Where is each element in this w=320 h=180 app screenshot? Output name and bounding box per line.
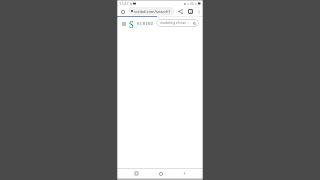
button[interactable]: Menu <box>121 21 126 26</box>
staticText: 4G <box>190 2 194 6</box>
button[interactable]: Tabs <box>186 7 194 15</box>
button[interactable]: More options <box>195 8 202 15</box>
button[interactable]: Home <box>156 169 165 178</box>
staticText: 11:27 <box>119 1 129 6</box>
staticText: 3 <box>190 10 192 14</box>
staticText: marketing of man … <box>160 21 190 25</box>
button[interactable]: marketing of man … <box>156 19 199 27</box>
staticText: SCRIBD <box>137 21 155 26</box>
button[interactable]: Back <box>180 169 189 178</box>
button[interactable]: Share <box>176 7 184 15</box>
button[interactable]: Reload <box>119 8 126 15</box>
staticText: scribd.com/search? <box>134 9 171 14</box>
button[interactable]: Recents <box>132 169 141 178</box>
button[interactable]: scribd.com/search? <box>128 7 174 15</box>
staticText: S <box>129 19 134 28</box>
